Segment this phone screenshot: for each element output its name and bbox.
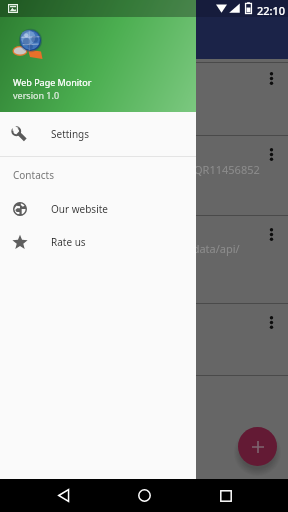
button[interactable]: Add [238,427,277,466]
button[interactable]: More options [269,228,274,241]
button[interactable]: Our website [0,193,196,225]
button[interactable]: Back [48,480,79,511]
staticText: QR11456852 [194,162,260,177]
staticText: Settings [51,127,90,141]
button[interactable]: More options [269,148,274,161]
staticText: Our website [51,202,108,216]
staticText: 22:10 [257,3,286,18]
button[interactable]: Recents [210,480,241,511]
button[interactable]: More options [269,316,274,329]
button[interactable]: Rate us [0,225,196,258]
staticText: http://data/api/ [160,241,240,256]
button[interactable]: More options [269,72,274,85]
button[interactable]: Settings [0,112,196,156]
staticText: Rate us [51,235,86,249]
staticText: Web Page Monitor [13,76,92,88]
staticText: version 1.0 [13,89,60,101]
staticText: Contacts [13,168,54,182]
button[interactable]: Home [129,480,160,511]
